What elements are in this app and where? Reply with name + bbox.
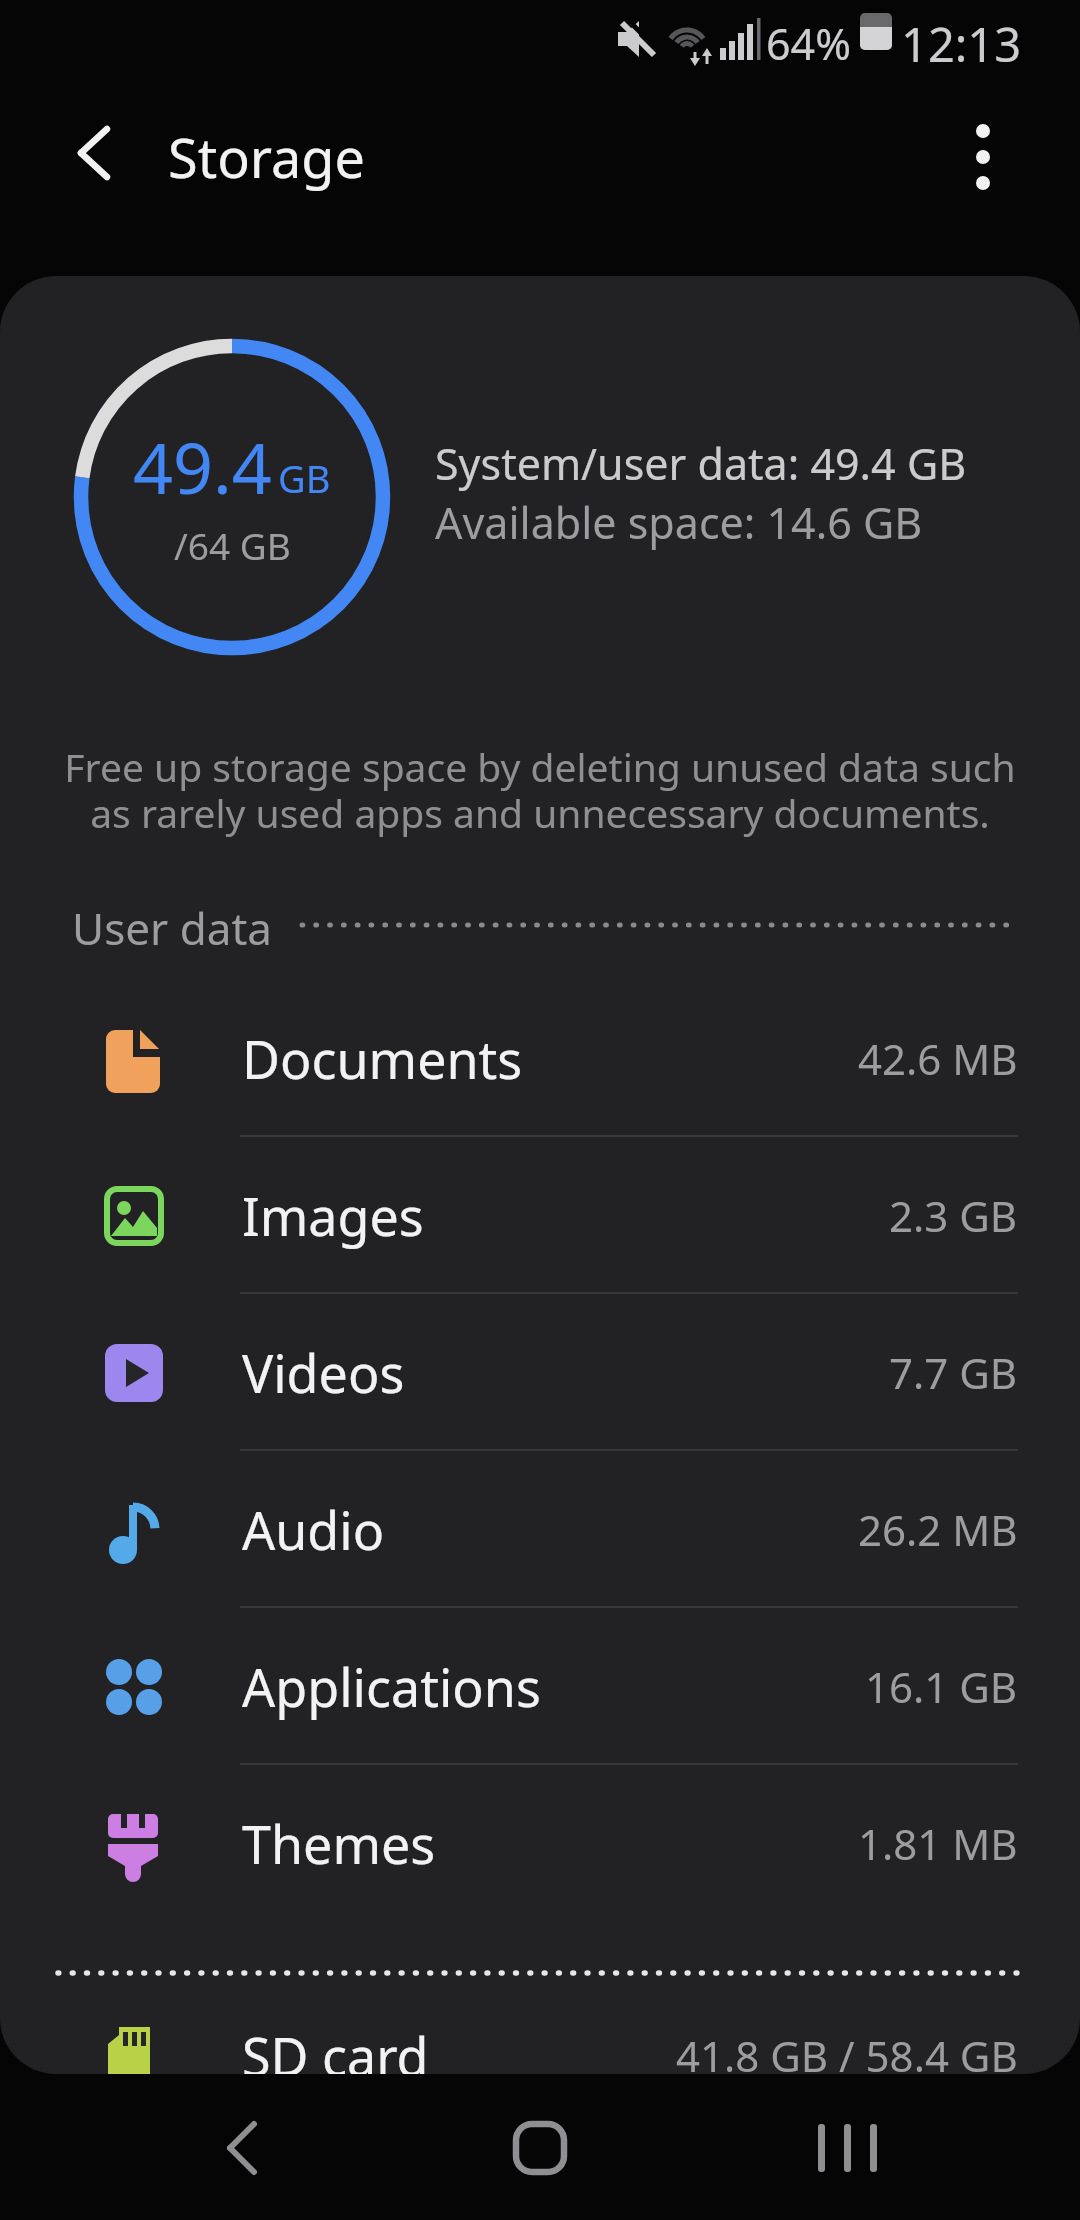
staticText: Available space: 14.6 GB <box>435 493 923 552</box>
button[interactable] <box>480 2110 600 2186</box>
staticText: 1.81 MB <box>858 1815 1018 1872</box>
staticText: Audio <box>242 1494 385 1565</box>
staticText: 26.2 MB <box>858 1501 1018 1558</box>
staticText: Images <box>242 1180 424 1251</box>
staticText: GB <box>278 452 331 504</box>
staticText: Documents <box>242 1023 523 1094</box>
staticText: Videos <box>242 1337 405 1408</box>
staticText: Storage <box>168 120 365 194</box>
button[interactable]: Applications <box>0 1608 1080 1765</box>
button[interactable]: Audio <box>0 1451 1080 1608</box>
button[interactable] <box>955 118 1011 198</box>
button[interactable] <box>180 2110 300 2186</box>
staticText: 7.7 GB <box>889 1344 1018 1401</box>
staticText: 2.3 GB <box>889 1187 1018 1244</box>
staticText: Free up storage space by deleting unused… <box>0 740 1080 840</box>
staticText: Applications <box>242 1651 541 1722</box>
staticText: System/user data: 49.4 GB <box>435 434 967 493</box>
staticText: SD card <box>242 2020 429 2074</box>
button[interactable]: Videos <box>0 1294 1080 1451</box>
button[interactable]: Images <box>0 1137 1080 1294</box>
staticText: 49.4 <box>133 419 272 514</box>
staticText: 41.8 GB / 58.4 GB <box>676 2027 1018 2074</box>
button[interactable]: Documents <box>0 980 1080 1137</box>
staticText: 12:13 <box>901 12 1022 76</box>
staticText: 16.1 GB <box>865 1658 1018 1715</box>
button[interactable]: SD card <box>0 1977 1080 2074</box>
staticText: Themes <box>242 1808 436 1879</box>
staticText: User data <box>72 898 272 958</box>
staticText: 64% <box>766 14 851 73</box>
staticText: /64 GB <box>174 520 291 570</box>
button[interactable]: Themes <box>0 1765 1080 1922</box>
staticText: 42.6 MB <box>858 1030 1018 1087</box>
button[interactable] <box>60 125 130 191</box>
button[interactable] <box>790 2110 910 2186</box>
